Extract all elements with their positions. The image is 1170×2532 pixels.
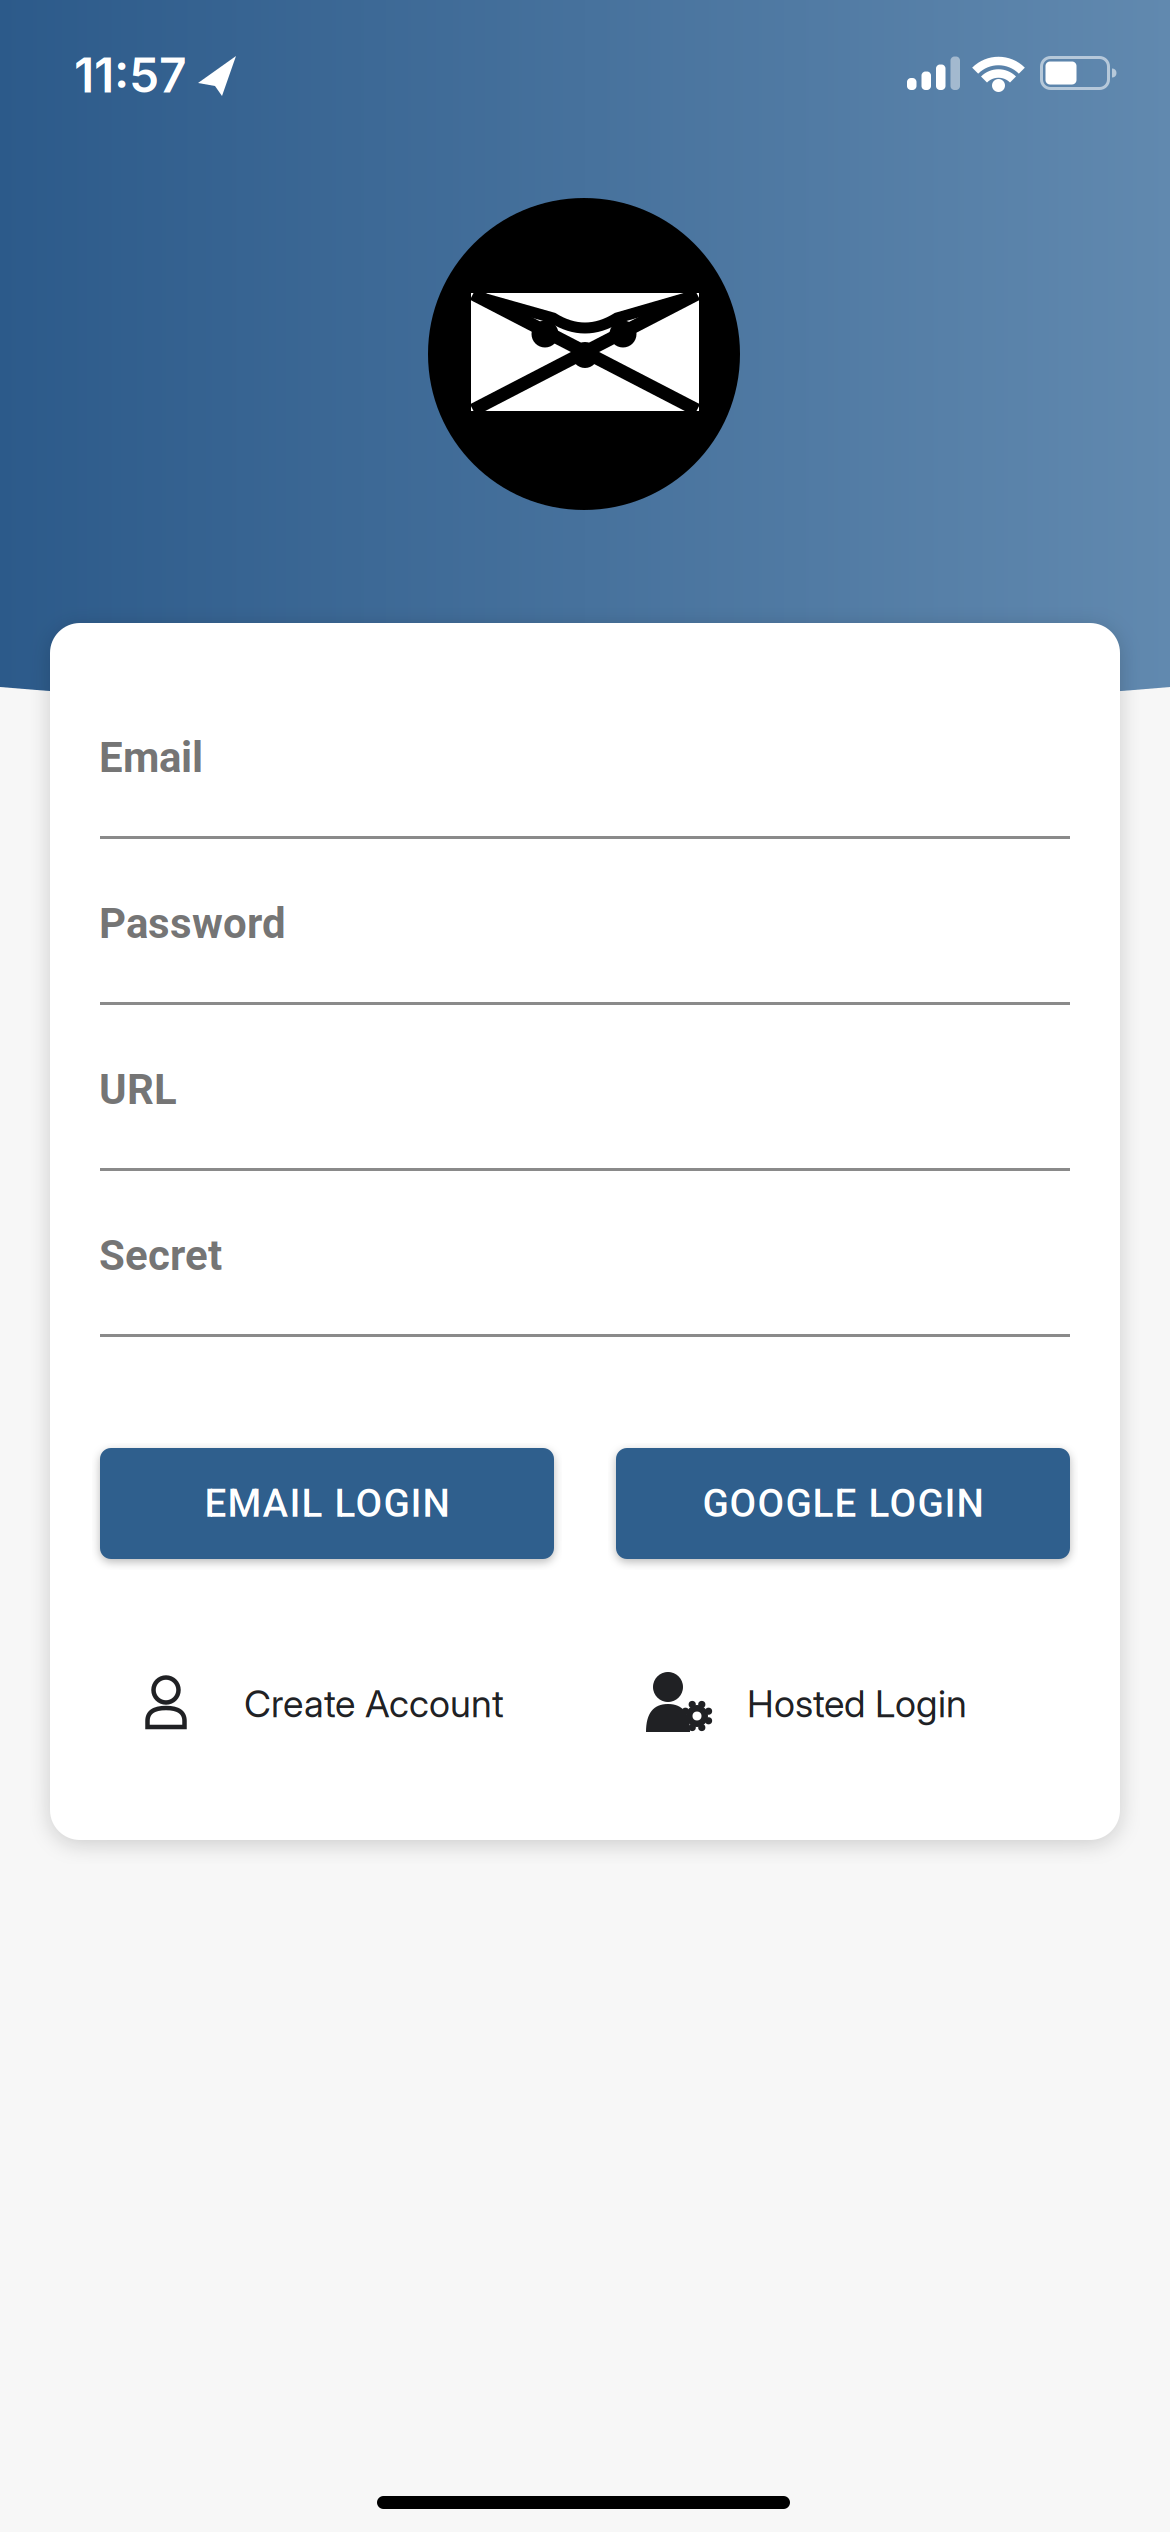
staticText: URL — [99, 1065, 177, 1114]
staticText: EMAIL LOGIN — [204, 1481, 449, 1526]
staticText: Password — [99, 899, 286, 948]
staticText: Hosted Login — [747, 1681, 967, 1726]
button[interactable]: URL — [100, 1065, 1070, 1175]
staticText: 11:57 — [74, 46, 187, 104]
button[interactable]: Password — [100, 899, 1070, 1009]
staticText: Email — [99, 733, 203, 782]
button[interactable]: Email — [100, 733, 1070, 843]
button[interactable]: EMAIL LOGIN — [100, 1448, 554, 1559]
staticText: Create Account — [244, 1681, 504, 1726]
staticText: GOOGLE LOGIN — [702, 1481, 983, 1526]
button[interactable]: Create Account — [145, 1670, 511, 1736]
button[interactable]: Hosted Login — [635, 1670, 980, 1736]
button[interactable]: GOOGLE LOGIN — [616, 1448, 1070, 1559]
button[interactable]: Secret — [100, 1231, 1070, 1341]
staticText: Secret — [99, 1231, 222, 1280]
